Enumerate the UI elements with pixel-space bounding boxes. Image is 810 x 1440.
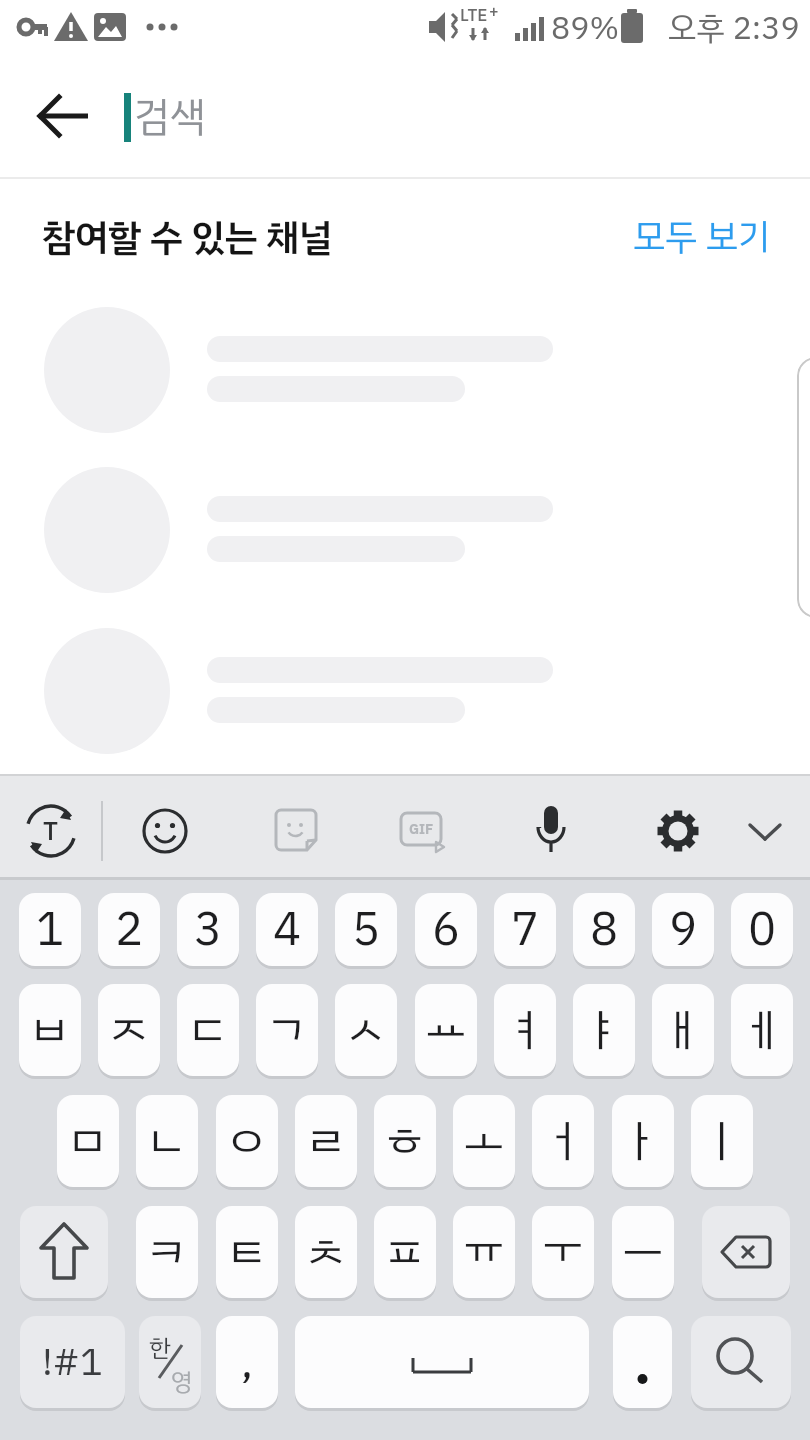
- staticText: ㄴ: [147, 1108, 187, 1174]
- staticText: ㅁ: [68, 1108, 108, 1174]
- staticText: 7: [511, 894, 540, 965]
- staticText: ㅌ: [227, 1219, 267, 1285]
- staticText: ㅇ: [227, 1108, 267, 1174]
- staticText: ㄱ: [267, 997, 307, 1063]
- staticText: 89%: [551, 4, 620, 52]
- button[interactable]: ㅛ: [415, 984, 477, 1076]
- button[interactable]: 1: [19, 893, 81, 966]
- staticText: +: [489, 0, 499, 18]
- button[interactable]: [0, 628, 790, 768]
- button[interactable]: ㅡ: [612, 1206, 674, 1298]
- staticText: ㅛ: [426, 997, 466, 1063]
- staticText: ㅈ: [109, 997, 149, 1063]
- button[interactable]: [141, 807, 189, 855]
- button[interactable]: 6: [415, 893, 477, 966]
- staticText: 오후 2:39: [668, 4, 800, 52]
- staticText: 9: [669, 894, 698, 965]
- button[interactable]: [20, 1206, 108, 1298]
- button[interactable]: [0, 467, 790, 607]
- staticText: GIF: [409, 819, 434, 840]
- staticText: ㅏ: [623, 1108, 663, 1174]
- button[interactable]: [295, 1316, 589, 1408]
- button[interactable]: [702, 1206, 790, 1298]
- staticText: ㅋ: [147, 1219, 187, 1285]
- button[interactable]: ㅊ: [295, 1206, 357, 1298]
- staticText: 영: [171, 1364, 193, 1394]
- staticText: ㅂ: [30, 997, 70, 1063]
- staticText: 2: [115, 894, 144, 965]
- button[interactable]: ㅅ: [335, 984, 397, 1076]
- staticText: ㅗ: [464, 1108, 504, 1174]
- button[interactable]: 3: [177, 893, 239, 966]
- staticText: ㅅ: [346, 997, 386, 1063]
- staticText: ,: [241, 1329, 253, 1395]
- button[interactable]: ㅍ: [374, 1206, 436, 1298]
- button[interactable]: ㅗ: [453, 1095, 515, 1187]
- button[interactable]: [0, 307, 790, 447]
- button[interactable]: [744, 816, 786, 848]
- button[interactable]: ㅈ: [98, 984, 160, 1076]
- staticText: ㅐ: [663, 997, 703, 1063]
- button[interactable]: ㅕ: [494, 984, 556, 1076]
- button[interactable]: ㅋ: [136, 1206, 198, 1298]
- staticText: ㅍ: [385, 1219, 425, 1285]
- staticText: !#1: [42, 1334, 103, 1391]
- button[interactable]: 8: [573, 893, 635, 966]
- button[interactable]: ㅓ: [532, 1095, 594, 1187]
- staticText: 3: [194, 894, 223, 965]
- staticText: ㅔ: [742, 997, 782, 1063]
- staticText: 모두 보기: [633, 210, 770, 264]
- staticText: 6: [432, 894, 461, 965]
- staticText: T: [43, 812, 59, 851]
- button[interactable]: ㅌ: [216, 1206, 278, 1298]
- button[interactable]: [655, 806, 701, 856]
- staticText: ㄷ: [188, 997, 228, 1063]
- button[interactable]: !#1: [20, 1316, 125, 1408]
- button[interactable]: ㅏ: [612, 1095, 674, 1187]
- staticText: LTE: [460, 3, 488, 28]
- button[interactable]: 7: [494, 893, 556, 966]
- button[interactable]: ㅁ: [57, 1095, 119, 1187]
- button[interactable]: ㅐ: [652, 984, 714, 1076]
- button[interactable]: ㄷ: [177, 984, 239, 1076]
- staticText: 한: [149, 1330, 171, 1360]
- staticText: ㅜ: [543, 1219, 583, 1285]
- button[interactable]: [531, 804, 571, 860]
- button[interactable]: [613, 1316, 672, 1408]
- button[interactable]: 0: [731, 893, 793, 966]
- button[interactable]: [25, 85, 105, 149]
- button[interactable]: 9: [652, 893, 714, 966]
- button[interactable]: [273, 807, 319, 855]
- button[interactable]: ㅣ: [691, 1095, 753, 1187]
- button[interactable]: ㅂ: [19, 984, 81, 1076]
- button[interactable]: ㄹ: [295, 1095, 357, 1187]
- staticText: ㅣ: [702, 1108, 742, 1174]
- button[interactable]: 2: [98, 893, 160, 966]
- button[interactable]: ㄴ: [136, 1095, 198, 1187]
- staticText: ㅓ: [543, 1108, 583, 1174]
- button[interactable]: ㅔ: [731, 984, 793, 1076]
- button[interactable]: 4: [256, 893, 318, 966]
- staticText: ㅑ: [584, 997, 624, 1063]
- staticText: ㅕ: [505, 997, 545, 1063]
- button[interactable]: 모두 보기: [600, 210, 770, 264]
- button[interactable]: ㅑ: [573, 984, 635, 1076]
- button[interactable]: ㅠ: [453, 1206, 515, 1298]
- staticText: ㅡ: [623, 1219, 663, 1285]
- button[interactable]: ,: [216, 1316, 278, 1408]
- button[interactable]: ㅇ: [216, 1095, 278, 1187]
- staticText: 8: [590, 894, 619, 965]
- button[interactable]: GIF: [399, 811, 447, 853]
- button[interactable]: ㅎ: [374, 1095, 436, 1187]
- staticText: 참여할 수 있는 채널: [42, 210, 333, 264]
- button[interactable]: ㅜ: [532, 1206, 594, 1298]
- button[interactable]: [691, 1316, 791, 1408]
- button[interactable]: ㄱ: [256, 984, 318, 1076]
- button[interactable]: T: [22, 800, 80, 862]
- button[interactable]: 검색: [134, 85, 434, 149]
- staticText: 4: [273, 894, 302, 965]
- button[interactable]: 한: [139, 1316, 201, 1408]
- button[interactable]: 5: [335, 893, 397, 966]
- staticText: ㄹ: [306, 1108, 346, 1174]
- staticText: ㅎ: [385, 1108, 425, 1174]
